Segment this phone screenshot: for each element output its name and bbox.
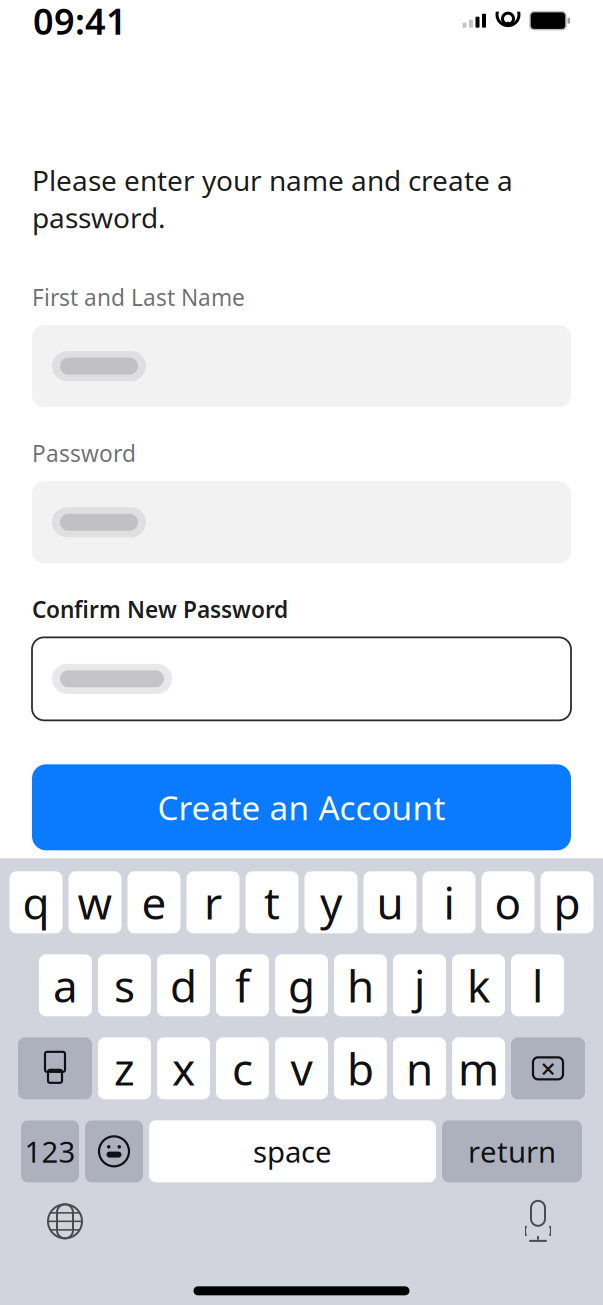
staticText: b xyxy=(347,1039,374,1097)
staticText: Create an Account xyxy=(157,785,445,829)
staticText: a xyxy=(53,956,78,1014)
button[interactable]: o xyxy=(481,871,534,933)
button[interactable]: f xyxy=(216,954,269,1016)
button[interactable]: w xyxy=(68,871,121,933)
button[interactable]: k xyxy=(452,954,505,1016)
staticText: c xyxy=(232,1039,253,1097)
button[interactable]: x xyxy=(157,1037,210,1099)
staticText: p xyxy=(553,873,580,931)
staticText: u xyxy=(376,873,403,931)
staticText: First and Last Name xyxy=(32,282,245,312)
staticText: y xyxy=(320,873,342,931)
staticText: v xyxy=(290,1039,312,1097)
staticText: j xyxy=(414,956,425,1014)
button[interactable]: 123 xyxy=(21,1120,79,1182)
staticText: s xyxy=(114,956,135,1014)
button[interactable]: d xyxy=(157,954,210,1016)
staticText: return xyxy=(468,1132,556,1171)
staticText: × xyxy=(540,1051,555,1086)
button[interactable]: g xyxy=(275,954,328,1016)
button[interactable] xyxy=(32,637,571,720)
staticText: i xyxy=(443,873,454,931)
button[interactable]: Shift xyxy=(18,1037,92,1099)
staticText: z xyxy=(114,1039,135,1097)
button[interactable] xyxy=(32,481,571,563)
button[interactable]: l xyxy=(511,954,564,1016)
button[interactable]: e xyxy=(127,871,180,933)
button[interactable]: s xyxy=(98,954,151,1016)
button[interactable]: q xyxy=(9,871,62,933)
button[interactable]: return xyxy=(442,1120,582,1182)
staticText: d xyxy=(170,956,197,1014)
button[interactable]: z xyxy=(98,1037,151,1099)
button[interactable]: t xyxy=(245,871,298,933)
staticText: f xyxy=(235,956,250,1014)
button[interactable]: j xyxy=(393,954,446,1016)
staticText: r xyxy=(204,873,222,931)
button[interactable]: u xyxy=(363,871,416,933)
button[interactable]: Next keyboard xyxy=(42,1198,88,1244)
button[interactable]: v xyxy=(275,1037,328,1099)
staticText: t xyxy=(264,873,280,931)
staticText: Confirm New Password xyxy=(32,594,288,624)
staticText: k xyxy=(467,956,490,1014)
button[interactable]: n xyxy=(393,1037,446,1099)
button[interactable]: h xyxy=(334,954,387,1016)
button[interactable]: Emoji xyxy=(85,1120,143,1182)
button[interactable]: c xyxy=(216,1037,269,1099)
staticText: g xyxy=(288,956,315,1014)
staticText: 09:41 xyxy=(33,0,127,45)
button[interactable]: r xyxy=(186,871,239,933)
button[interactable]: i xyxy=(422,871,475,933)
staticText: e xyxy=(141,873,166,931)
staticText: w xyxy=(77,873,112,931)
button[interactable]: p xyxy=(540,871,593,933)
staticText: 123 xyxy=(24,1132,75,1171)
staticText: m xyxy=(458,1039,499,1097)
button[interactable]: space xyxy=(149,1120,436,1182)
button[interactable]: Create an Account xyxy=(32,764,571,850)
staticText: l xyxy=(532,956,543,1014)
staticText: q xyxy=(22,873,49,931)
button[interactable]: b xyxy=(334,1037,387,1099)
button[interactable]: a xyxy=(39,954,92,1016)
staticText: h xyxy=(347,956,374,1014)
staticText: x xyxy=(172,1039,195,1097)
staticText: n xyxy=(406,1039,433,1097)
button[interactable]: Delete xyxy=(511,1037,585,1099)
staticText: o xyxy=(494,873,521,931)
button[interactable]: Dictation xyxy=(515,1198,561,1244)
button[interactable] xyxy=(32,325,571,407)
staticText: Please enter your name and create a pass… xyxy=(32,162,513,236)
button[interactable]: m xyxy=(452,1037,505,1099)
staticText: space xyxy=(253,1132,332,1171)
button[interactable]: y xyxy=(304,871,357,933)
staticText: Password xyxy=(32,438,136,468)
